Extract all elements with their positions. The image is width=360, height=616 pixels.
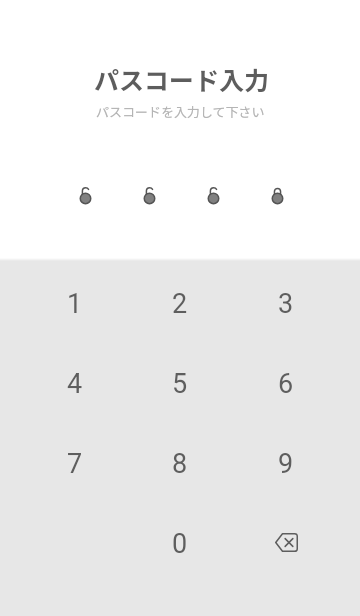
button[interactable]: 7: [0, 424, 120, 504]
staticText: 2: [172, 288, 188, 320]
staticText: 6: [278, 368, 294, 400]
button[interactable]: 2: [120, 263, 240, 344]
staticText: パスコードを入力して下さい: [96, 102, 265, 121]
staticText: 5: [172, 368, 188, 400]
staticText: 7: [67, 448, 83, 480]
button[interactable]: 4: [0, 344, 120, 424]
button[interactable]: 8: [120, 424, 240, 504]
button[interactable]: Backspace: [240, 504, 360, 584]
staticText: 8: [172, 448, 188, 480]
button[interactable]: 1: [0, 263, 120, 344]
button[interactable]: 6: [240, 344, 360, 424]
button[interactable]: 3: [240, 263, 360, 344]
staticText: 3: [278, 288, 294, 320]
other: Backspace: [275, 533, 298, 552]
staticText: 4: [67, 368, 83, 400]
staticText: 1: [67, 288, 83, 320]
button[interactable]: 5: [120, 344, 240, 424]
button[interactable]: 0: [120, 504, 240, 584]
staticText: 0: [172, 528, 188, 560]
button[interactable]: 9: [240, 424, 360, 504]
staticText: 9: [278, 448, 294, 480]
staticText: パスコード入力: [94, 61, 270, 97]
